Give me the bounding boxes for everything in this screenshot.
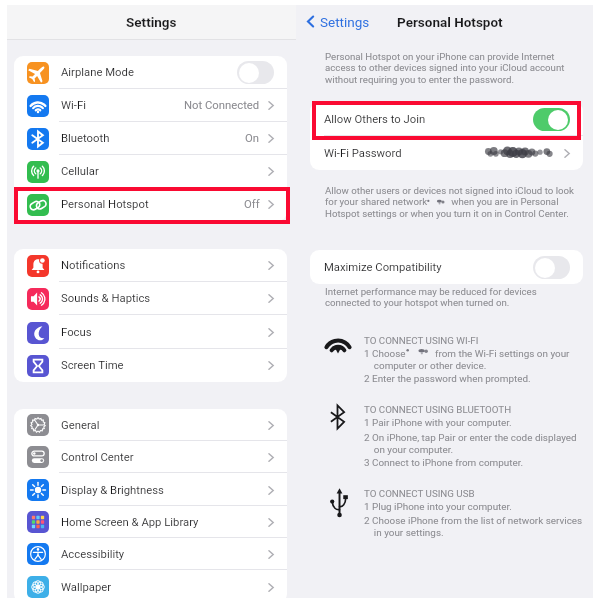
button[interactable]: Notifications	[14, 249, 287, 282]
staticText: Bluetooth	[61, 132, 110, 145]
button[interactable]: Control Center	[14, 441, 287, 473]
staticText: Internet performance may be reduced for …	[325, 286, 537, 309]
staticText: 2 On iPhone, tap Pair or enter the code …	[364, 432, 577, 455]
staticText: Off	[244, 198, 260, 211]
staticText: 1 Plug iPhone into your computer.	[364, 501, 512, 513]
staticText: 2 Choose iPhone from the list of network…	[364, 515, 583, 538]
staticText: 1 Pair iPhone with your computer.	[364, 417, 512, 429]
staticText: Screen Time	[61, 359, 124, 372]
staticText: TO CONNECT USING USB	[364, 488, 475, 499]
other: Open	[268, 199, 274, 210]
other: Open	[268, 260, 274, 271]
button[interactable]: Wi-Fi Password	[310, 136, 583, 170]
staticText: Personal Hotspot on your iPhone can prov…	[325, 51, 565, 86]
button[interactable]: Focus	[14, 316, 287, 349]
staticText: Focus	[61, 326, 92, 339]
other: Open	[268, 517, 274, 528]
other: Open	[268, 420, 274, 431]
staticText: 3 Connect to iPhone from computer.	[364, 457, 524, 469]
other: Open	[268, 485, 274, 496]
button[interactable]: Home Screen & App Library	[14, 506, 287, 538]
staticText: Notifications	[61, 259, 126, 272]
button[interactable]: Display & Brightness	[14, 474, 287, 506]
staticText: Settings	[126, 14, 177, 30]
staticText: Maximize Compatibility	[324, 261, 442, 274]
staticText: On	[245, 132, 260, 145]
other: Open	[268, 133, 274, 144]
other: Open	[268, 582, 274, 593]
button[interactable]: Bluetooth	[14, 122, 287, 155]
staticText: Allow Others to Join	[324, 113, 426, 126]
button[interactable]: General	[14, 409, 287, 441]
other: TO CONNECT USING USB	[330, 488, 347, 518]
staticText: Personal Hotspot	[61, 198, 149, 211]
other: Open	[268, 100, 274, 111]
staticText: 1 Choose from the Wi-Fi settings on your…	[364, 348, 570, 371]
staticText: Display & Brightness	[61, 484, 164, 497]
button[interactable]: Maximize Compatibility	[310, 250, 583, 284]
staticText: Allow other users or devices not signed …	[325, 185, 575, 220]
staticText: Wallpaper	[61, 581, 112, 594]
button[interactable]: Airplane Mode	[14, 56, 287, 89]
other: Open	[268, 360, 274, 371]
other: Open	[564, 148, 570, 159]
button[interactable]: Cellular	[14, 155, 287, 188]
staticText: TO CONNECT USING WI-FI	[364, 335, 479, 346]
other: Open	[268, 327, 274, 338]
button[interactable]: Sounds & Haptics	[14, 282, 287, 315]
button[interactable]: Screen Time	[14, 349, 287, 382]
staticText: Cellular	[61, 165, 99, 178]
button[interactable]: Turn on	[533, 256, 570, 279]
other: Open	[268, 293, 274, 304]
other: Open	[268, 166, 274, 177]
other: TO CONNECT USING WI-FI	[325, 334, 351, 353]
button[interactable]: Allow Others to Join	[310, 102, 583, 136]
staticText: 2 Enter the password when prompted.	[364, 373, 531, 385]
staticText: Control Center	[61, 451, 134, 464]
other: Open	[268, 452, 274, 463]
staticText: Settings	[320, 14, 370, 30]
button[interactable]: Personal Hotspot	[14, 188, 287, 221]
button[interactable]: Settings	[307, 5, 370, 38]
staticText: Home Screen & App Library	[61, 516, 199, 529]
staticText: Wi-Fi Password	[324, 147, 402, 160]
button[interactable]: Turn on	[237, 61, 274, 84]
staticText: Wi-Fi	[61, 99, 86, 112]
other: TO CONNECT USING BLUETOOTH	[330, 405, 345, 429]
staticText: Personal Hotspot	[397, 14, 503, 30]
button[interactable]: Wallpaper	[14, 571, 287, 603]
staticText: TO CONNECT USING BLUETOOTH	[364, 404, 512, 415]
button[interactable]: Accessibility	[14, 538, 287, 570]
staticText: Accessibility	[61, 548, 125, 561]
staticText: Sounds & Haptics	[61, 292, 151, 305]
button[interactable]: Wi-Fi	[14, 89, 287, 122]
button[interactable]: Turn off	[533, 108, 570, 131]
staticText: Not Connected	[184, 99, 260, 112]
staticText: Airplane Mode	[61, 66, 134, 79]
other: Open	[268, 549, 274, 560]
staticText: General	[61, 419, 100, 432]
